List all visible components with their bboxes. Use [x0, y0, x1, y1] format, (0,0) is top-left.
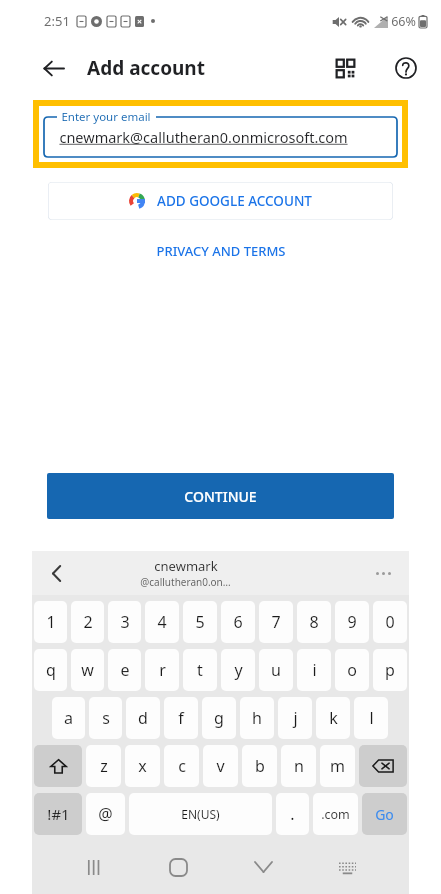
button[interactable]: c [164, 745, 199, 787]
button[interactable]: b [242, 745, 277, 787]
button[interactable]: v [203, 745, 238, 787]
staticText: c [178, 755, 186, 777]
staticText: y [234, 659, 243, 681]
button[interactable]: z [86, 745, 121, 787]
staticText: 6 [233, 611, 243, 633]
button[interactable]: EN(US) [129, 793, 272, 835]
button[interactable]: p [373, 649, 407, 691]
button[interactable]: m [320, 745, 355, 787]
button[interactable]: t [183, 649, 217, 691]
staticText: k [329, 707, 338, 729]
staticText: 2 [83, 611, 93, 633]
button[interactable]: .com [313, 793, 358, 835]
staticText: 5 [195, 611, 205, 633]
button[interactable]: . [276, 793, 309, 835]
button[interactable]: q [34, 649, 67, 691]
staticText: f [178, 707, 184, 729]
staticText: m [330, 755, 345, 777]
staticText: z [100, 755, 108, 777]
staticText: Go [375, 805, 394, 824]
button[interactable]: Previous suggestion [40, 556, 74, 590]
button[interactable]: g [202, 697, 236, 739]
button[interactable]: a [52, 697, 85, 739]
button[interactable]: CONTINUE [47, 473, 394, 519]
staticText: p [385, 659, 395, 681]
button[interactable]: Help [387, 49, 425, 87]
staticText: 0 [385, 611, 395, 633]
button[interactable]: e [108, 649, 141, 691]
button[interactable]: y [221, 649, 255, 691]
staticText: @ [98, 803, 113, 825]
staticText: x [138, 755, 147, 777]
staticText: b [255, 755, 265, 777]
staticText: j [293, 707, 298, 729]
staticText: cnewmark@callutheran0.onmicrosoft.com [59, 127, 348, 147]
staticText: !#1 [47, 804, 70, 824]
button[interactable]: Change keyboard [324, 844, 370, 890]
staticText: ADD GOOGLE ACCOUNT [157, 192, 312, 210]
button[interactable]: f [164, 697, 198, 739]
button[interactable]: 9 [335, 601, 369, 643]
button[interactable]: 5 [183, 601, 217, 643]
staticText: Add account [87, 55, 205, 81]
button[interactable]: u [259, 649, 293, 691]
staticText: e [120, 659, 130, 681]
staticText: w [81, 659, 94, 681]
button[interactable]: w [71, 649, 104, 691]
button[interactable]: 1 [34, 601, 67, 643]
button[interactable]: n [281, 745, 316, 787]
button[interactable]: o [335, 649, 369, 691]
button[interactable]: d [126, 697, 160, 739]
staticText: s [102, 707, 110, 729]
button[interactable]: Go [362, 793, 407, 835]
staticText: o [347, 659, 357, 681]
button[interactable]: Home [155, 844, 201, 890]
button[interactable]: Scan QR code [326, 49, 364, 87]
button[interactable]: More options [372, 568, 395, 579]
button[interactable]: 2 [71, 601, 104, 643]
button[interactable]: Recent apps [71, 844, 117, 890]
staticText: a [64, 707, 73, 729]
button[interactable]: h [240, 697, 274, 739]
button[interactable]: Back [36, 51, 70, 85]
staticText: 1 [46, 611, 56, 633]
staticText: v [216, 755, 225, 777]
staticText: cnewmark [154, 557, 218, 575]
button[interactable]: cnewmark [134, 555, 237, 591]
button[interactable]: r [145, 649, 179, 691]
staticText: t [197, 659, 203, 681]
button[interactable]: 0 [373, 601, 407, 643]
staticText: r [159, 659, 166, 681]
button[interactable]: 3 [108, 601, 141, 643]
staticText: u [271, 659, 281, 681]
button[interactable]: x [125, 745, 160, 787]
staticText: .com [321, 806, 350, 823]
staticText: i [312, 659, 317, 681]
staticText: g [214, 707, 224, 729]
staticText: 8 [309, 611, 319, 633]
button[interactable]: ADD GOOGLE ACCOUNT [48, 182, 393, 220]
staticText: 3 [120, 611, 130, 633]
button[interactable]: i [297, 649, 331, 691]
staticText: EN(US) [181, 806, 220, 822]
staticText: 66% [391, 13, 416, 30]
staticText: l [369, 707, 374, 729]
button[interactable]: 4 [145, 601, 179, 643]
button[interactable]: l [354, 697, 388, 739]
staticText: h [252, 707, 262, 729]
button[interactable]: !#1 [34, 793, 82, 835]
button[interactable]: k [316, 697, 350, 739]
button[interactable]: j [278, 697, 312, 739]
button[interactable]: @ [86, 793, 125, 835]
button[interactable]: s [89, 697, 122, 739]
button[interactable]: 6 [221, 601, 255, 643]
button[interactable]: PRIVACY AND TERMS [148, 238, 294, 264]
button[interactable]: Shift [34, 745, 82, 787]
button[interactable]: 7 [259, 601, 293, 643]
staticText: @callutheran0.on… [140, 575, 231, 589]
button[interactable]: 8 [297, 601, 331, 643]
button[interactable]: Backspace [359, 745, 407, 787]
button[interactable]: Hide keyboard [240, 844, 286, 890]
staticText: 7 [271, 611, 281, 633]
button[interactable]: Enter your email [43, 110, 398, 158]
